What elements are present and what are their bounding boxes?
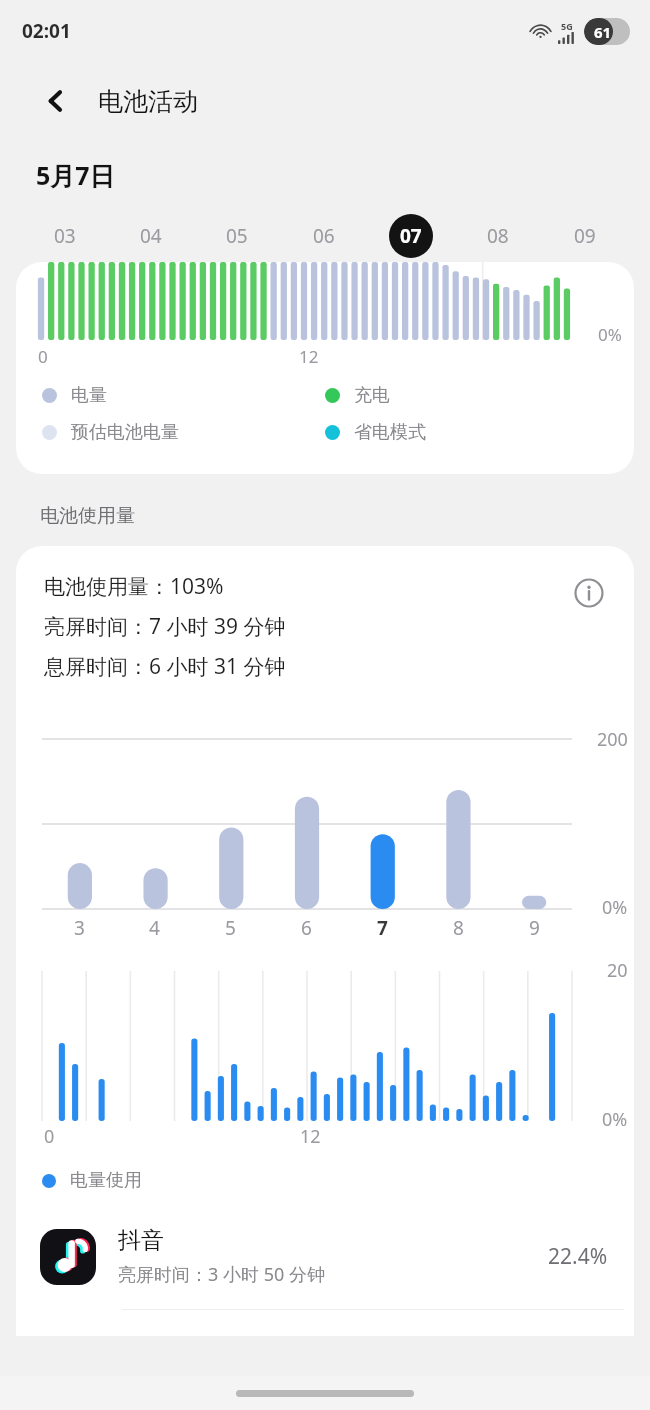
staticText: 电量使用 xyxy=(70,1169,142,1192)
staticText: 5G xyxy=(561,20,573,32)
staticText: 亮屏时间：7 小时 39 分钟 xyxy=(44,612,286,641)
staticText: 4 xyxy=(149,915,160,941)
staticText: 12 xyxy=(299,345,319,368)
staticText: 09 xyxy=(574,223,596,249)
staticText: 抖音 xyxy=(118,1226,164,1255)
staticText: 息屏时间：6 小时 31 分钟 xyxy=(44,652,286,681)
staticText: 省电模式 xyxy=(354,421,426,444)
staticText: 06 xyxy=(313,223,335,249)
staticText: 亮屏时间：3 小时 50 分钟 xyxy=(118,1262,325,1287)
staticText: 07 xyxy=(400,223,422,249)
staticText: 0 xyxy=(38,345,48,368)
staticText: 6 xyxy=(301,915,312,941)
button[interactable]: Info xyxy=(568,572,610,614)
staticText: 04 xyxy=(140,223,162,249)
button[interactable]: 抖音 xyxy=(16,1226,634,1336)
staticText: 0 xyxy=(44,1124,55,1149)
staticText: 3 xyxy=(74,915,85,941)
staticText: 9 xyxy=(529,915,540,941)
staticText: 12 xyxy=(300,1124,321,1149)
staticText: 20 xyxy=(607,958,628,983)
staticText: 0% xyxy=(602,1107,628,1132)
staticText: 61 xyxy=(594,22,612,42)
staticText: 200 xyxy=(597,727,628,752)
button[interactable]: 0% xyxy=(16,262,634,474)
staticText: 电量 xyxy=(71,384,107,407)
button[interactable]: Back xyxy=(34,79,78,123)
staticText: 充电 xyxy=(354,384,390,407)
staticText: 08 xyxy=(487,223,509,249)
staticText: 8 xyxy=(453,915,464,941)
staticText: 电池使用量 xyxy=(40,504,135,528)
staticText: 02:01 xyxy=(22,18,71,44)
staticText: 22.4% xyxy=(548,1242,608,1271)
staticText: 0% xyxy=(602,895,628,920)
staticText: 7 xyxy=(377,915,388,941)
staticText: 05 xyxy=(226,223,248,249)
staticText: 电池使用量：103% xyxy=(44,572,224,601)
staticText: 03 xyxy=(54,223,76,249)
staticText: 电池活动 xyxy=(98,86,198,117)
staticText: 5 xyxy=(225,915,236,941)
staticText: 0% xyxy=(598,323,622,346)
staticText: 5月7日 xyxy=(36,158,115,192)
staticText: 预估电池电量 xyxy=(71,421,179,444)
